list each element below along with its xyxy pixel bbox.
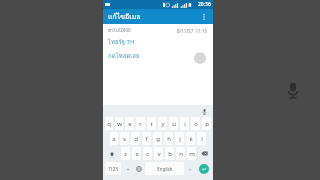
button[interactable]: x xyxy=(132,147,141,160)
staticText: p xyxy=(205,120,209,128)
staticText: 20:36 xyxy=(198,1,211,8)
staticText: m xyxy=(189,150,195,158)
staticText: x xyxy=(135,150,139,158)
button[interactable]: m xyxy=(187,147,196,160)
staticText: English xyxy=(157,166,173,172)
staticText: o xyxy=(194,120,198,128)
button[interactable]: i xyxy=(180,117,189,130)
button[interactable]: More options xyxy=(198,11,210,23)
button[interactable]: Microphone xyxy=(280,77,306,103)
staticText: k xyxy=(189,135,193,143)
staticText: g xyxy=(156,135,160,143)
button[interactable]: Contact avatar xyxy=(194,52,206,64)
button[interactable]: g xyxy=(153,132,162,145)
staticText: a xyxy=(112,135,116,143)
button[interactable]: Voice input xyxy=(199,106,209,116)
button[interactable]: Emoji xyxy=(134,162,143,175)
staticText: w xyxy=(117,120,122,128)
button[interactable]: b xyxy=(165,147,174,160)
staticText: t xyxy=(150,120,153,128)
staticText: ?123 xyxy=(108,166,118,172)
staticText: กดโหลดเลย xyxy=(108,51,140,61)
staticText: c xyxy=(146,150,149,158)
button[interactable]: y xyxy=(158,117,167,130)
button[interactable]: Period xyxy=(186,162,194,175)
staticText: j xyxy=(179,135,181,143)
staticText: n xyxy=(179,150,183,158)
button[interactable]: v xyxy=(154,147,163,160)
button[interactable]: r xyxy=(136,117,145,130)
button[interactable]: Backspace xyxy=(198,147,211,160)
staticText: f xyxy=(145,135,148,143)
staticText: s xyxy=(123,135,126,143)
button[interactable]: k xyxy=(186,132,195,145)
staticText: h xyxy=(167,135,171,143)
button[interactable]: f xyxy=(142,132,151,145)
button[interactable]: t xyxy=(147,117,156,130)
staticText: b xyxy=(168,150,172,158)
button[interactable]: j xyxy=(175,132,184,145)
button[interactable]: English xyxy=(145,162,184,175)
button[interactable]: Send xyxy=(196,162,211,175)
staticText: ทั่วไป/2000 xyxy=(108,27,131,34)
staticText: q xyxy=(107,120,111,128)
button[interactable]: s xyxy=(120,132,129,145)
staticText: i xyxy=(184,120,186,128)
button[interactable]: l xyxy=(197,132,206,145)
button[interactable]: q xyxy=(105,117,113,130)
staticText: v xyxy=(157,150,161,158)
button[interactable]: a xyxy=(110,132,118,145)
staticText: l xyxy=(201,135,203,143)
staticText: 8/11/57 11:15 xyxy=(177,28,208,34)
staticText: u xyxy=(172,120,176,128)
button[interactable]: ?123 xyxy=(105,162,121,175)
staticText: z xyxy=(124,150,127,158)
button[interactable]: Comma xyxy=(123,162,132,175)
button[interactable]: e xyxy=(125,117,134,130)
button[interactable]: u xyxy=(169,117,178,130)
button[interactable]: d xyxy=(131,132,140,145)
staticText: e xyxy=(128,120,132,128)
button[interactable]: n xyxy=(176,147,185,160)
button[interactable]: Shift xyxy=(105,147,119,160)
button[interactable]: o xyxy=(191,117,200,130)
staticText: แก้ไขอีเมล xyxy=(108,11,141,22)
button[interactable]: w xyxy=(115,117,123,130)
button[interactable]: z xyxy=(121,147,130,160)
button[interactable]: p xyxy=(202,117,211,130)
staticText: ไทยรัฐ TH xyxy=(108,37,135,47)
staticText: y xyxy=(161,120,165,128)
button[interactable]: c xyxy=(143,147,152,160)
staticText: r xyxy=(139,120,142,128)
staticText: d xyxy=(134,135,138,143)
button[interactable]: h xyxy=(164,132,173,145)
